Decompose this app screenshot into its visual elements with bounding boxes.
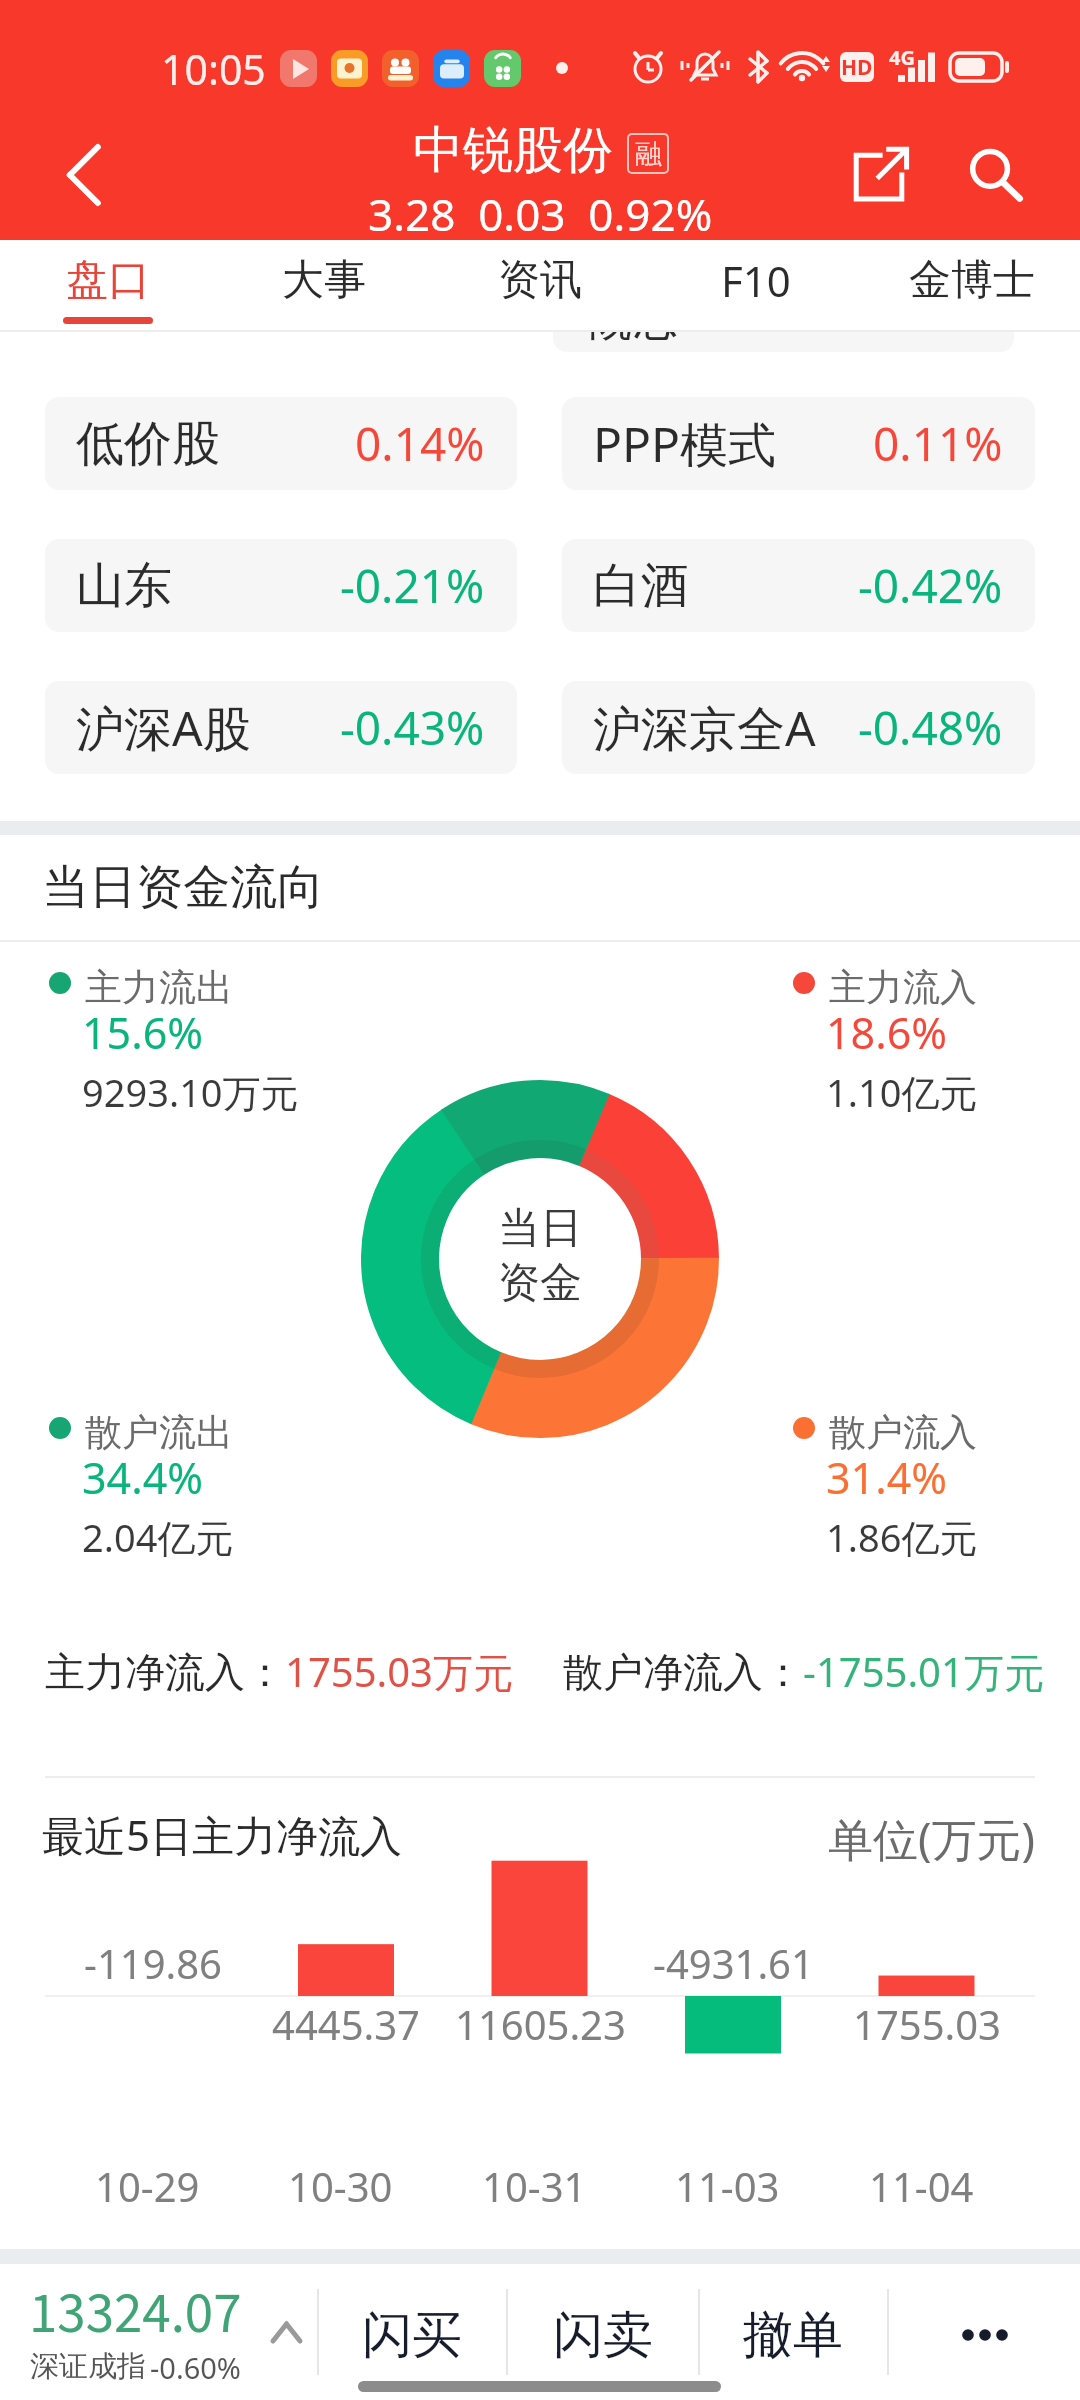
button[interactable]: 撤单 (699, 2264, 887, 2400)
staticText: 2.04亿元 (82, 1511, 234, 1563)
staticText: 资讯 (498, 254, 582, 307)
staticText: 主力流入 (829, 964, 977, 1011)
staticText: -0.48% (858, 696, 1003, 759)
button[interactable]: 概念 (553, 332, 1014, 352)
staticText: -119.86 (84, 1936, 222, 1988)
staticText: 金博士 (909, 254, 1035, 307)
staticText: 18.6% (826, 1003, 948, 1062)
staticText: 沪深京全A (593, 695, 816, 761)
staticText: 4445.37 (272, 1997, 420, 2049)
staticText: 10:05 (161, 41, 266, 97)
button[interactable]: 盘口 (0, 240, 216, 332)
staticText: 9293.10万元 (82, 1066, 299, 1118)
button[interactable]: 低价股 (45, 397, 517, 490)
staticText: -0.42% (858, 554, 1003, 617)
button[interactable]: 13324.07 (0, 2264, 317, 2400)
staticText: 1.86亿元 (826, 1511, 978, 1563)
staticText: 资金 (498, 1257, 582, 1310)
staticText: 10-29 (95, 2159, 200, 2209)
staticText: 15.6% (82, 1003, 204, 1062)
staticText: 白酒 (593, 556, 689, 616)
button[interactable]: 资讯 (432, 240, 648, 332)
button[interactable]: 大事 (216, 240, 432, 332)
button[interactable]: 白酒 (562, 539, 1035, 632)
staticText: 31.4% (826, 1448, 948, 1507)
staticText: 4G (889, 44, 915, 71)
staticText: 当日 (498, 1202, 582, 1255)
staticText: 11-03 (675, 2159, 780, 2209)
button[interactable]: Back (0, 110, 160, 240)
staticText: 低价股 (76, 414, 220, 474)
button[interactable]: Share (824, 120, 934, 230)
staticText: 散户净流入： (563, 1647, 803, 1697)
staticText: 主力流出 (85, 964, 233, 1011)
staticText: 单位(万元) (828, 1808, 1036, 1869)
staticText: 融 (635, 137, 662, 171)
staticText: 山东 (76, 556, 172, 616)
button[interactable]: 沪深京全A (562, 681, 1035, 774)
button[interactable]: 沪深A股 (45, 681, 517, 774)
staticText: 闪卖 (553, 2304, 653, 2367)
staticText: 11605.23 (455, 1997, 626, 2049)
button[interactable]: 闪买 (318, 2264, 506, 2400)
staticText: HD (841, 53, 873, 82)
staticText: 闪买 (362, 2304, 462, 2367)
staticText: F10 (721, 252, 791, 309)
staticText: 0.14% (355, 412, 485, 475)
button[interactable]: Search (940, 120, 1050, 230)
staticText: 散户流入 (829, 1409, 977, 1456)
staticText: 沪深A股 (76, 695, 251, 761)
staticText: 最近5日主力净流入 (42, 1806, 403, 1863)
staticText: 13324.07 (29, 2274, 242, 2355)
staticText: 10-31 (482, 2159, 587, 2209)
staticText: 1755.03万元 (285, 1644, 513, 1699)
staticText: 大事 (282, 254, 366, 307)
button[interactable]: PPP模式 (562, 397, 1035, 490)
staticText: 1.10亿元 (826, 1066, 978, 1118)
button[interactable]: More options (888, 2264, 1080, 2400)
staticText: -0.21% (340, 554, 485, 617)
staticText: 0.11% (873, 412, 1003, 475)
staticText: 3.28 0.03 0.92% (368, 184, 713, 244)
staticText: 主力净流入： (45, 1647, 285, 1697)
staticText: 散户流出 (85, 1409, 233, 1456)
button[interactable]: 金博士 (864, 240, 1080, 332)
button[interactable]: 闪卖 (507, 2264, 698, 2400)
staticText: 当日资金流向 (42, 858, 324, 917)
button[interactable]: 山东 (45, 539, 517, 632)
staticText: 11-04 (869, 2159, 974, 2209)
staticText: 概念 (584, 332, 680, 349)
button[interactable]: F10 (648, 240, 864, 332)
staticText: 1755.03 (853, 1997, 1001, 2049)
staticText: -0.43% (340, 696, 485, 759)
staticText: -4931.61 (653, 1936, 814, 1988)
staticText: 34.4% (82, 1448, 204, 1507)
staticText: 盘口 (66, 254, 150, 307)
staticText: 深证成指 (30, 2348, 146, 2385)
staticText: -1755.01万元 (803, 1644, 1044, 1699)
staticText: -0.60% (150, 2348, 241, 2387)
staticText: 10-30 (288, 2159, 393, 2209)
staticText: 撤单 (743, 2304, 843, 2367)
staticText: 中锐股份 (413, 119, 613, 182)
staticText: PPP模式 (593, 411, 777, 477)
